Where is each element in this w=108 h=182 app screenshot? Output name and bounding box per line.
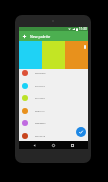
staticText: #21D4F7: [35, 84, 45, 87]
button[interactable]: [65, 41, 88, 69]
staticText: #C1E425: [35, 96, 45, 99]
button[interactable]: Back: [31, 142, 38, 149]
button[interactable]: Home: [50, 142, 57, 149]
button[interactable]: Close: [19, 31, 88, 41]
button[interactable]: #D2401E: [19, 129, 88, 142]
button[interactable]: #21D4F7: [19, 79, 88, 92]
button[interactable]: #E8911C: [19, 104, 88, 117]
button[interactable]: #BB6BDC: [19, 116, 88, 129]
staticText: 11:30: [79, 27, 87, 31]
button[interactable]: Recents: [69, 142, 76, 149]
button[interactable]: #DD5B3C: [19, 66, 88, 79]
staticText: #DD5B3C: [35, 71, 46, 74]
staticText: #E8911C: [35, 109, 45, 112]
staticText: #D2401E: [35, 134, 46, 137]
staticText: New palette: [30, 34, 51, 39]
button[interactable]: Save palette: [76, 127, 86, 137]
staticText: #BB6BDC: [35, 121, 46, 124]
button[interactable]: #C1E425: [19, 91, 88, 104]
button[interactable]: Close: [21, 33, 28, 40]
